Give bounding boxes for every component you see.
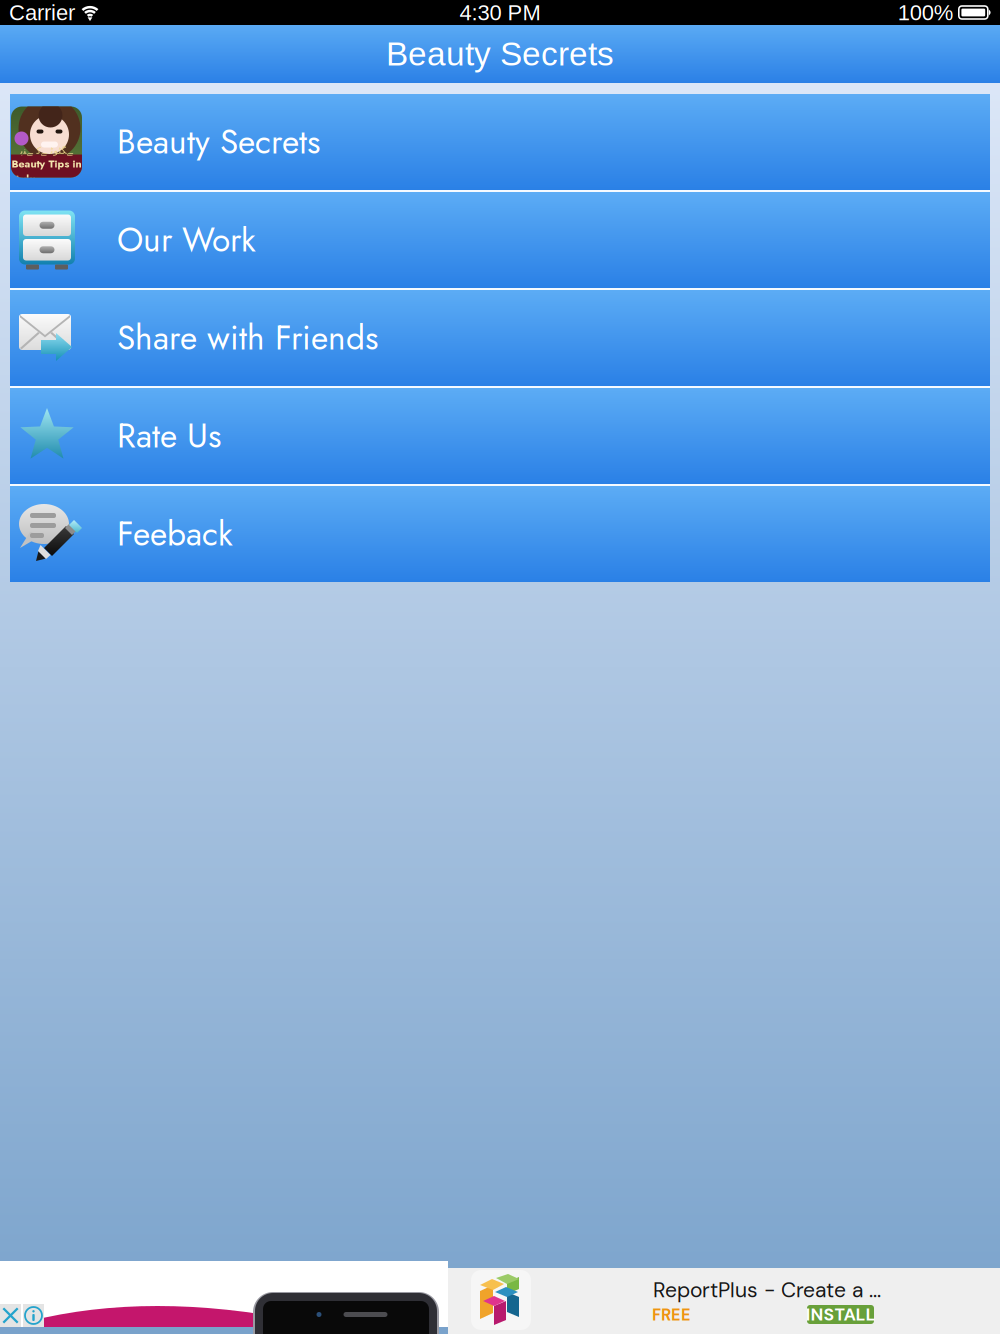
button[interactable]: ﮯﮕﭩﻮﭨ ﮯﮐ ﮯﻨﺑ	[10, 94, 990, 190]
staticText: FREE	[652, 1304, 691, 1326]
staticText: Beauty Secrets	[386, 35, 614, 73]
staticText: Share with Friends	[117, 314, 378, 362]
staticText: Carrier	[9, 0, 75, 25]
staticText: INSTALL	[805, 1303, 875, 1326]
staticText: 4:30 PM	[459, 0, 540, 25]
button[interactable]: Feeback	[10, 486, 990, 582]
staticText: Beauty Secrets	[117, 118, 320, 166]
staticText: Our Work	[117, 216, 256, 264]
button[interactable]: Our Work	[10, 192, 990, 288]
button[interactable]: Share with Friends	[10, 290, 990, 386]
staticText: ReportPlus - Create a ...	[653, 1276, 881, 1304]
staticText: Feeback	[117, 510, 233, 558]
staticText: 100%	[898, 0, 954, 25]
button[interactable]: Rate Us	[10, 388, 990, 484]
staticText: Rate Us	[117, 412, 221, 460]
button[interactable]: ReportPlus - Create a ...	[0, 1268, 1000, 1334]
staticText: Beauty Tips in Urdu	[11, 156, 81, 187]
staticText: ﮯﮕﭩﻮﭨ ﮯﮐ ﮯﻨﺑ	[20, 145, 73, 156]
